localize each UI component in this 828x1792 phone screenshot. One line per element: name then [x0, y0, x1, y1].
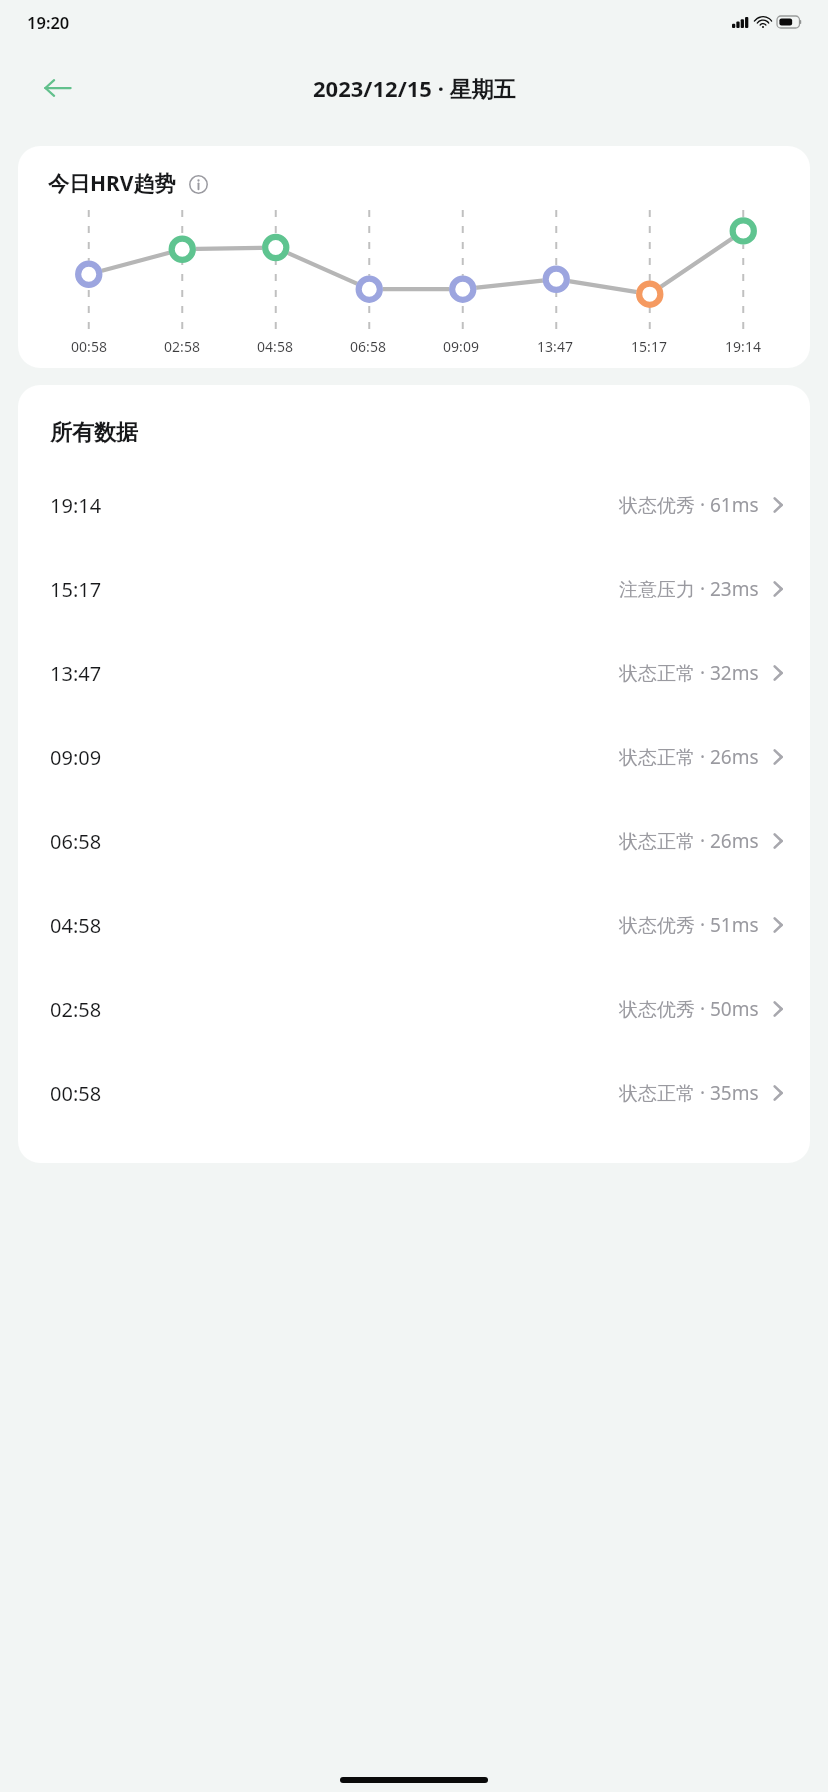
staticText: 状态正常 · 32ms	[619, 660, 759, 686]
staticText: 19:20	[27, 11, 70, 33]
staticText: 状态优秀 · 50ms	[619, 996, 759, 1022]
staticText: 今日HRV趋势	[48, 169, 176, 198]
staticText: 13:47	[537, 337, 573, 356]
staticText: 15:17	[631, 337, 667, 356]
staticText: 06:58	[50, 828, 102, 855]
button[interactable]: 15:17	[18, 547, 810, 631]
staticText: 注意压力 · 23ms	[619, 576, 759, 602]
staticText: 04:58	[257, 337, 293, 356]
staticText: 04:58	[50, 912, 102, 939]
staticText: 19:14	[725, 337, 761, 356]
staticText: 09:09	[443, 337, 479, 356]
button[interactable]: Info	[185, 171, 211, 197]
button[interactable]: 02:58	[18, 967, 810, 1051]
staticText: 状态正常 · 26ms	[619, 744, 759, 770]
staticText: 所有数据	[50, 419, 138, 447]
staticText: 06:58	[350, 337, 386, 356]
button[interactable]: 19:14	[18, 463, 810, 547]
button[interactable]: 04:58	[18, 883, 810, 967]
button[interactable]: Back	[30, 60, 86, 116]
button[interactable]: 09:09	[18, 715, 810, 799]
staticText: 13:47	[50, 660, 102, 687]
staticText: 状态正常 · 26ms	[619, 828, 759, 854]
staticText: 02:58	[50, 996, 102, 1023]
staticText: 状态正常 · 35ms	[619, 1080, 759, 1106]
staticText: 00:58	[50, 1080, 102, 1107]
staticText: 状态优秀 · 51ms	[619, 912, 759, 938]
staticText: 2023/12/15 · 星期五	[313, 73, 516, 103]
staticText: 状态优秀 · 61ms	[619, 492, 759, 518]
staticText: 19:14	[50, 492, 102, 519]
staticText: 09:09	[50, 744, 102, 771]
button[interactable]: 00:58	[18, 1051, 810, 1135]
button[interactable]: 13:47	[18, 631, 810, 715]
staticText: 02:58	[164, 337, 200, 356]
staticText: 15:17	[50, 576, 102, 603]
staticText: 00:58	[71, 337, 107, 356]
button[interactable]: 06:58	[18, 799, 810, 883]
